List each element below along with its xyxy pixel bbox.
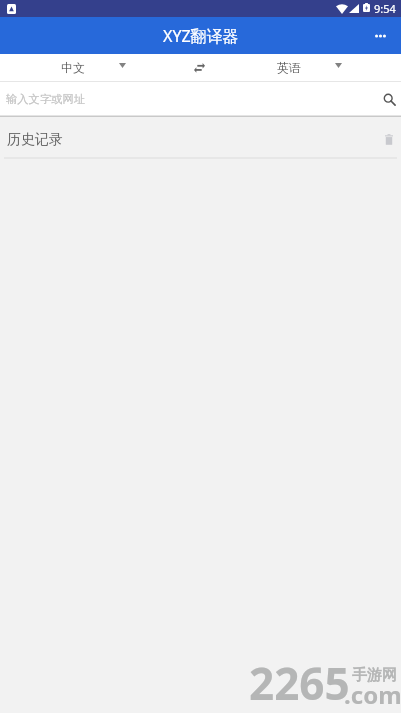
staticText: 中文: [61, 60, 85, 75]
button[interactable]: 输入文字或网址: [0, 82, 401, 117]
staticText: 手游网: [352, 666, 397, 685]
button[interactable]: 英语: [264, 54, 356, 81]
staticText: 2265: [249, 653, 350, 713]
button[interactable]: Search: [375, 82, 401, 117]
staticText: .com: [344, 678, 401, 711]
button[interactable]: 中文: [48, 54, 140, 81]
button[interactable]: Swap languages: [178, 54, 220, 81]
staticText: 英语: [277, 60, 301, 75]
button[interactable]: More options: [360, 17, 400, 54]
staticText: 历史记录: [7, 131, 63, 149]
staticText: XYZ翻译器: [163, 25, 239, 47]
staticText: 输入文字或网址: [6, 92, 86, 106]
staticText: 9:54: [374, 1, 396, 16]
button[interactable]: Clear history: [378, 128, 400, 150]
button[interactable]: 历史记录: [0, 117, 401, 159]
